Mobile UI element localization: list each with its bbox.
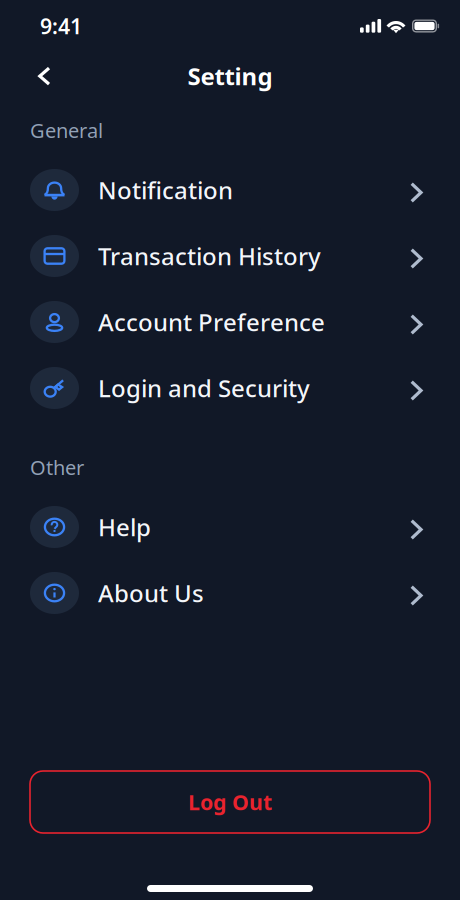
- button[interactable]: Help: [0, 494, 460, 560]
- button[interactable]: Back: [27, 55, 62, 96]
- staticText: Setting: [187, 60, 272, 92]
- button[interactable]: Transaction History: [0, 223, 460, 289]
- staticText: Help: [98, 511, 151, 543]
- staticText: 9:41: [40, 12, 82, 40]
- button[interactable]: Login and Security: [0, 355, 460, 421]
- staticText: Notification: [98, 174, 233, 206]
- staticText: Transaction History: [98, 240, 321, 272]
- button[interactable]: Account Preference: [0, 289, 460, 355]
- button[interactable]: Notification: [0, 157, 460, 223]
- staticText: Login and Security: [98, 372, 310, 404]
- staticText: Log Out: [188, 788, 272, 816]
- staticText: Other: [30, 454, 84, 481]
- button[interactable]: Log Out: [0, 771, 460, 833]
- staticText: Account Preference: [98, 306, 325, 338]
- staticText: General: [30, 117, 103, 144]
- button[interactable]: About Us: [0, 560, 460, 626]
- staticText: About Us: [98, 577, 204, 609]
